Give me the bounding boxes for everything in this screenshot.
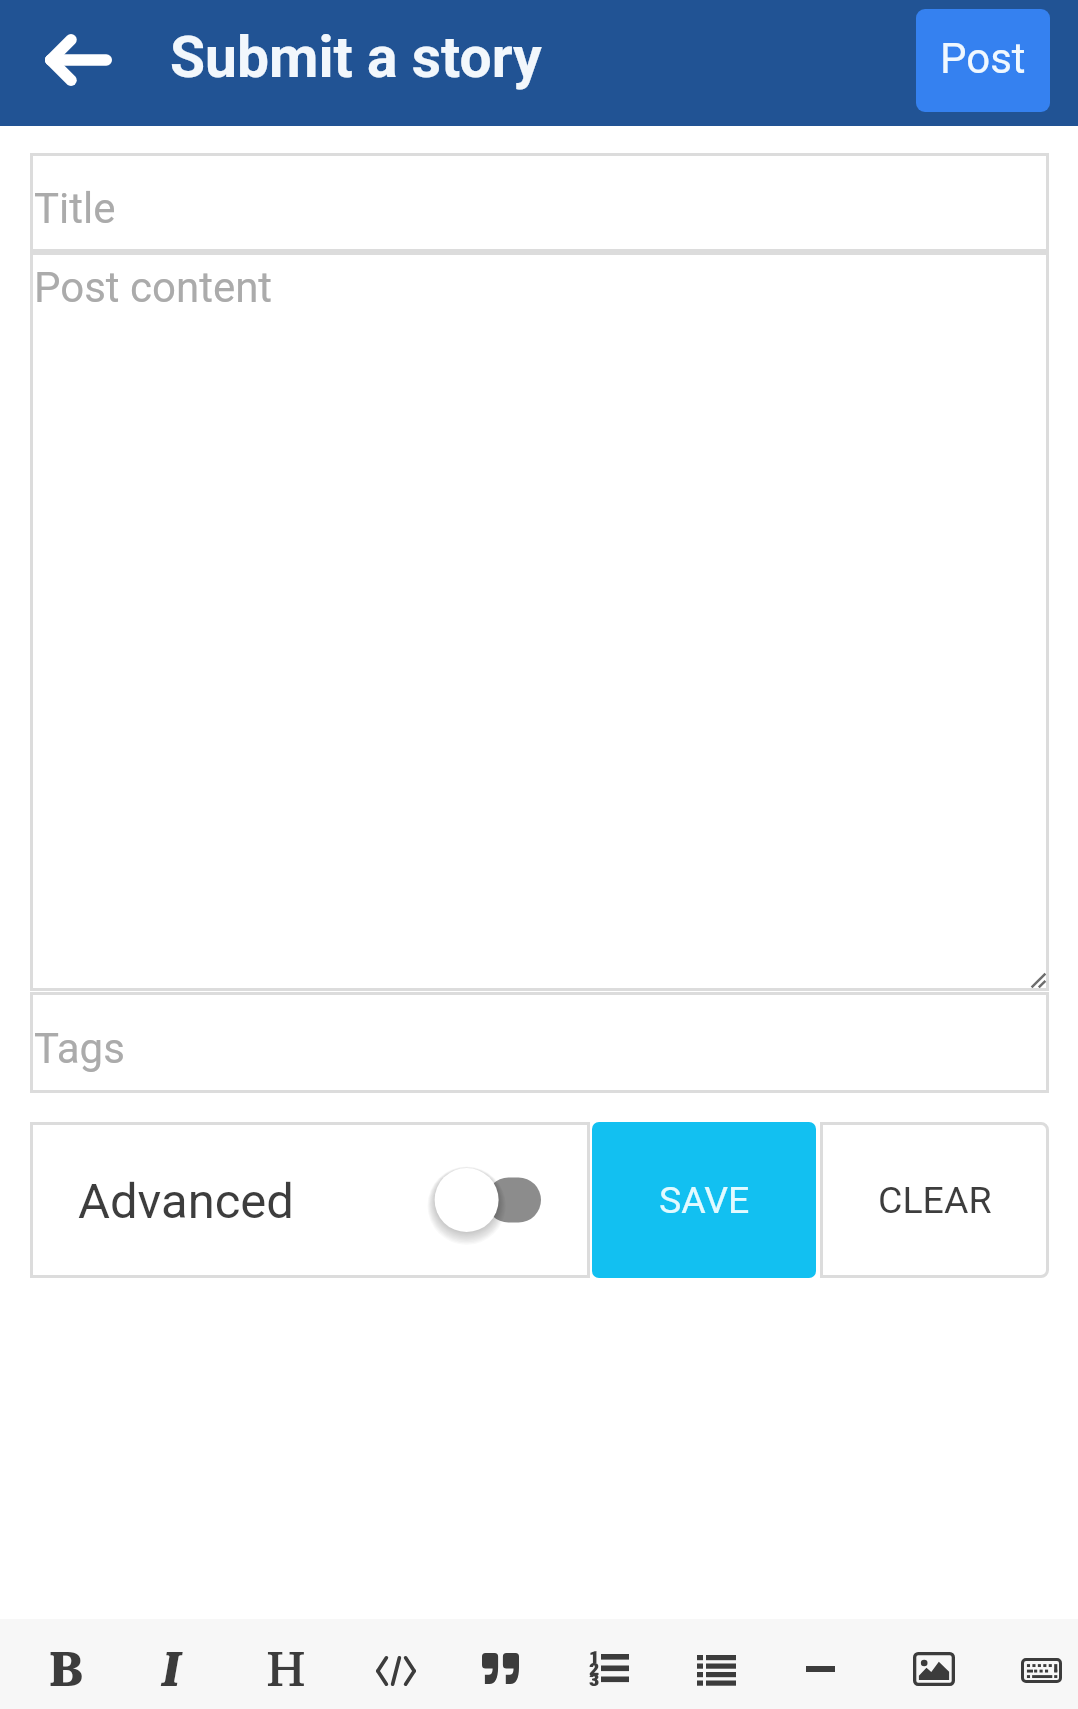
staticText: I [162,1642,182,1698]
button[interactable]: Advanced [30,1122,590,1278]
staticText: Title [34,184,116,233]
button[interactable]: Bulleted list [662,1619,770,1709]
staticText: B [49,1642,84,1698]
button[interactable]: SAVE [592,1122,816,1278]
staticText: Post [940,34,1026,83]
button[interactable]: Quote [445,1619,553,1709]
button[interactable]: Code [337,1619,445,1709]
staticText: CLEAR [878,1178,992,1222]
button[interactable]: Tags [30,992,1049,1093]
button[interactable]: Title [30,153,1049,252]
button[interactable]: Italic [120,1619,228,1709]
staticText: Submit a story [170,24,542,91]
staticText: H [266,1642,306,1698]
staticText: 2 [590,1660,600,1679]
staticText: Post content [34,263,273,312]
button[interactable]: Horizontal rule [770,1619,878,1709]
staticText: SAVE [659,1178,750,1222]
staticText: 1 [589,1648,599,1667]
button[interactable]: Post [916,9,1050,112]
button[interactable]: Post content [30,252,1049,991]
button[interactable]: Back [18,0,138,126]
staticText: 3 [589,1671,599,1690]
staticText: 3 [590,1671,600,1690]
button[interactable]: Heading [229,1619,337,1709]
button[interactable]: Keyboard [987,1619,1078,1709]
button[interactable]: CLEAR [820,1122,1049,1278]
staticText: Tags [34,1024,125,1073]
button[interactable]: Bold [12,1619,120,1709]
staticText: 1 [590,1648,600,1667]
staticText: Advanced [78,1173,294,1230]
button[interactable]: Insert image [879,1619,987,1709]
staticText: 2 [589,1660,599,1679]
button[interactable]: Numbered list [554,1619,662,1709]
